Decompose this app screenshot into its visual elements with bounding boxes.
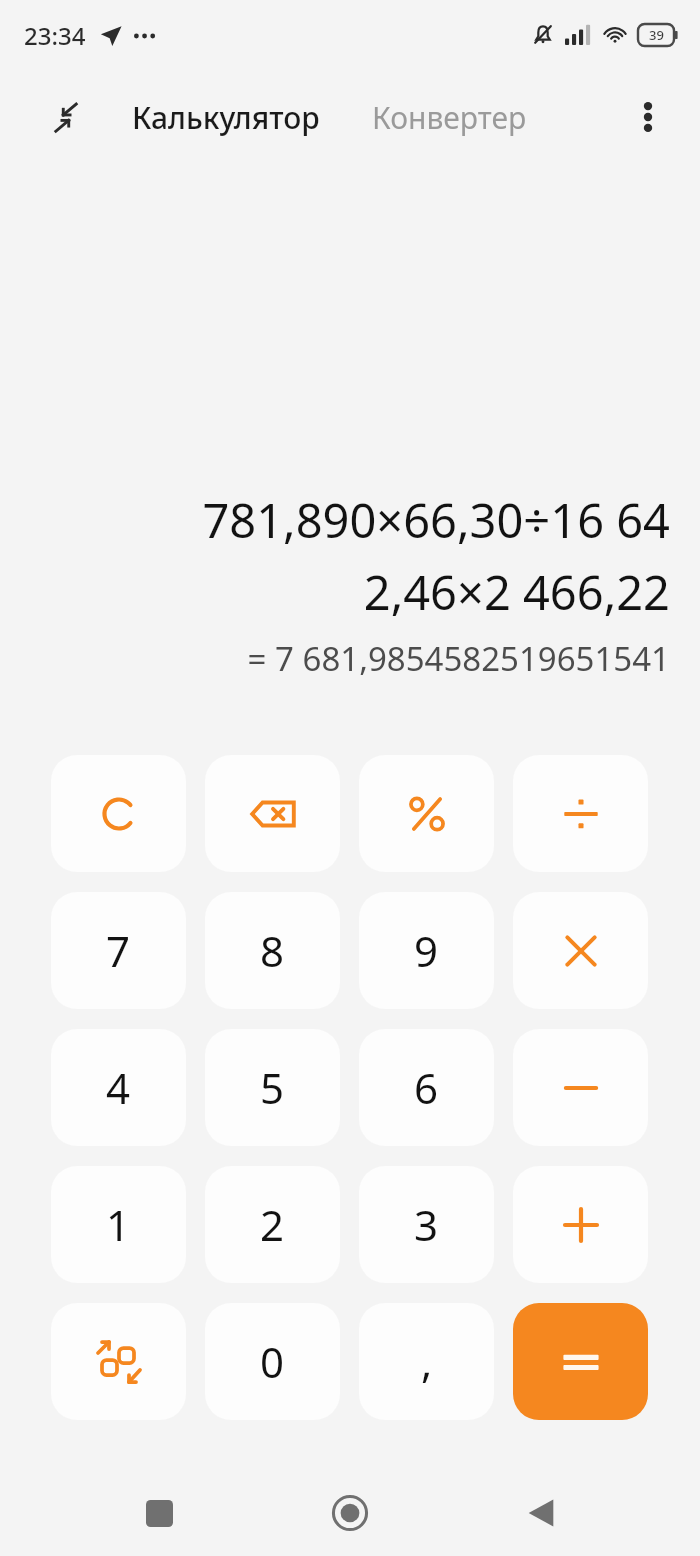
staticText: 1 (106, 1196, 131, 1253)
button[interactable]: Collapse (40, 91, 92, 143)
staticText: 3 (414, 1196, 439, 1253)
button[interactable]: Plus (513, 1166, 648, 1283)
button[interactable]: 9 (359, 892, 494, 1009)
staticText: 2,46×2 466,22 (30, 560, 670, 624)
button[interactable]: Minus (513, 1029, 648, 1146)
button[interactable]: 0 (205, 1303, 340, 1420)
staticText: Калькулятор (132, 97, 320, 138)
staticText: 0 (260, 1333, 285, 1390)
button[interactable]: More options (622, 91, 674, 143)
button[interactable]: Divide (513, 755, 648, 872)
button[interactable]: Конвертер (368, 91, 531, 144)
button[interactable]: Backspace (205, 755, 340, 872)
button[interactable]: Back (509, 1481, 573, 1545)
button[interactable]: Home (318, 1481, 382, 1545)
button[interactable]: , (359, 1303, 494, 1420)
staticText: Конвертер (372, 97, 527, 138)
staticText: 8 (260, 922, 285, 979)
button[interactable]: 4 (51, 1029, 186, 1146)
button[interactable]: 6 (359, 1029, 494, 1146)
staticText: 4 (106, 1059, 131, 1116)
button[interactable]: Калькулятор (128, 91, 324, 144)
button[interactable]: 7 (51, 892, 186, 1009)
button[interactable]: 1 (51, 1166, 186, 1283)
button[interactable]: Multiply (513, 892, 648, 1009)
button[interactable]: Equals (513, 1303, 648, 1420)
staticText: 7 (106, 922, 131, 979)
button[interactable]: 5 (205, 1029, 340, 1146)
button[interactable] (51, 755, 186, 872)
button[interactable]: Recents (127, 1481, 191, 1545)
staticText: , (421, 1333, 433, 1390)
button[interactable]: 2 (205, 1166, 340, 1283)
button[interactable]: 8 (205, 892, 340, 1009)
staticText: 23:34 (24, 19, 86, 52)
staticText: 9 (414, 922, 439, 979)
staticText: = 7 681,9854582519651541 (30, 636, 670, 681)
button[interactable]: Percent (359, 755, 494, 872)
staticText: 781,890×66,30÷16 64 (30, 488, 670, 552)
staticText: 6 (414, 1059, 439, 1116)
button[interactable]: 3 (359, 1166, 494, 1283)
staticText: 39 (649, 26, 664, 44)
staticText: 2 (260, 1196, 285, 1253)
button[interactable]: More functions (51, 1303, 186, 1420)
staticText: 5 (260, 1059, 285, 1116)
